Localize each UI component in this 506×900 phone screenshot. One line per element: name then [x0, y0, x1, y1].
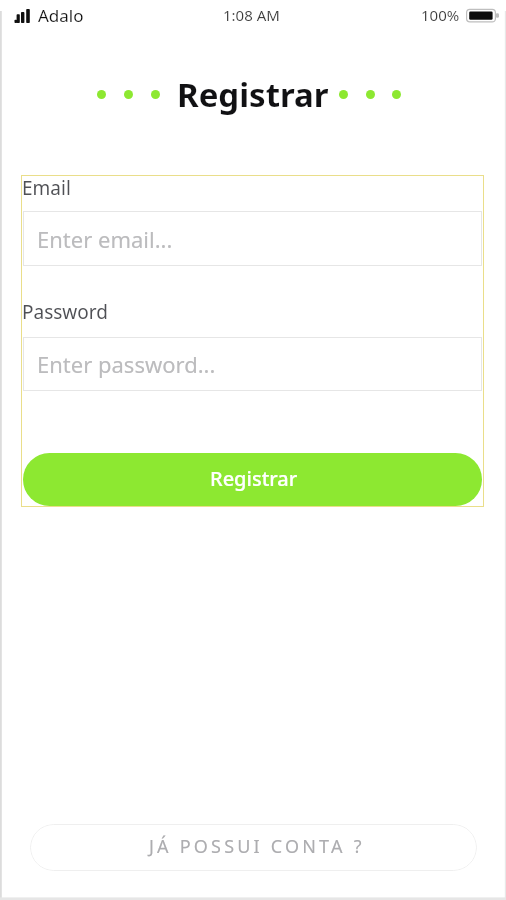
other: Cellular signal strength: [14, 9, 32, 23]
staticText: Registrar: [177, 72, 329, 117]
staticText: Enter email...: [37, 224, 173, 254]
staticText: 100%: [421, 5, 460, 25]
staticText: 1:08 AM: [223, 5, 280, 25]
button[interactable]: Registrar: [23, 453, 482, 506]
other: Battery full: [466, 9, 500, 23]
staticText: Email: [22, 175, 71, 201]
button[interactable]: Enter password...: [23, 337, 482, 391]
staticText: Enter password...: [37, 349, 216, 379]
staticText: Registrar: [210, 465, 298, 492]
button[interactable]: JÁ POSSUI CONTA ?: [30, 824, 477, 871]
staticText: Adalo: [38, 4, 84, 27]
staticText: JÁ POSSUI CONTA ?: [149, 834, 365, 859]
button[interactable]: Enter email...: [23, 211, 482, 266]
staticText: Password: [22, 299, 108, 325]
